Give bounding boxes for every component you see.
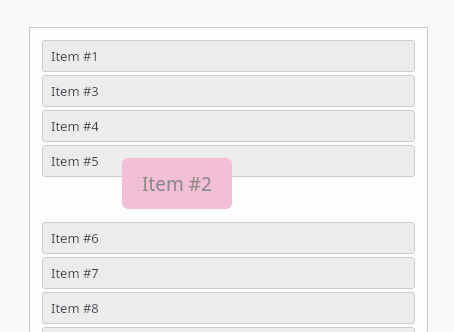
button[interactable]: Item #9 — [42, 327, 415, 332]
button[interactable]: Item #7 — [42, 257, 415, 289]
button[interactable]: Item #2 — [122, 158, 232, 209]
button[interactable]: Item #1 — [42, 40, 415, 72]
staticText: Item #8 — [51, 299, 99, 317]
staticText: Item #4 — [51, 117, 99, 135]
button[interactable]: Item #8 — [42, 292, 415, 324]
staticText: Item #6 — [51, 229, 99, 247]
staticText: Item #7 — [51, 264, 99, 282]
staticText: Item #1 — [51, 47, 99, 65]
staticText: Item #3 — [51, 82, 99, 100]
staticText: Item #2 — [142, 171, 212, 197]
button[interactable]: Item #4 — [42, 110, 415, 142]
button[interactable]: Item #3 — [42, 75, 415, 107]
staticText: Item #5 — [51, 152, 99, 170]
button[interactable]: Item #5 — [42, 145, 415, 177]
button[interactable]: Item #6 — [42, 222, 415, 254]
